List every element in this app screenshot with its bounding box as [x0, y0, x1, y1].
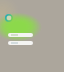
button[interactable]: Profile	[4, 13, 14, 23]
button[interactable]	[8, 33, 33, 37]
button[interactable]	[8, 41, 33, 45]
